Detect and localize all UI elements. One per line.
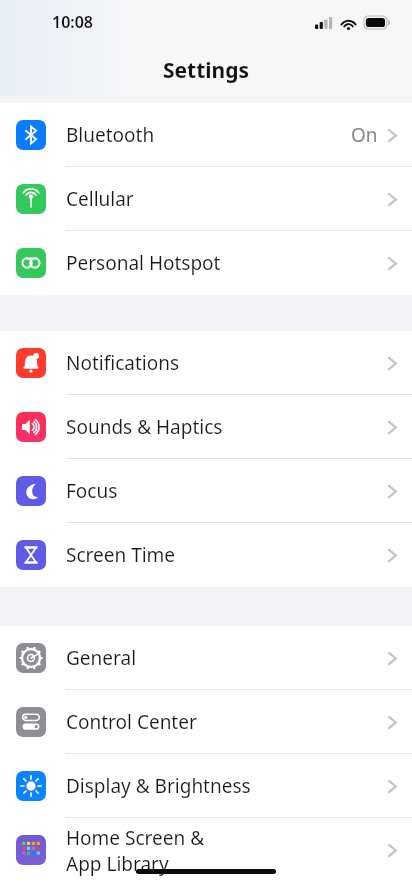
staticText: Settings [163,56,250,85]
button[interactable]: Screen Time [0,523,412,587]
staticText: Screen Time [66,542,176,568]
staticText: Control Center [66,709,197,735]
button[interactable]: Home Screen & App Library [0,818,412,882]
button[interactable]: Cellular [0,167,412,231]
staticText: Notifications [66,350,180,376]
staticText: Bluetooth [66,122,155,148]
staticText: 10:08 [52,11,94,33]
staticText: Home Screen & App Library [66,825,205,876]
staticText: On [351,122,378,148]
staticText: Display & Brightness [66,773,251,799]
button[interactable]: Notifications [0,331,412,395]
staticText: Cellular [66,186,134,212]
staticText: Sounds & Haptics [66,414,223,440]
staticText: Focus [66,478,118,504]
button[interactable]: Control Center [0,690,412,754]
button[interactable]: Display & Brightness [0,754,412,818]
button[interactable]: General [0,626,412,690]
staticText: General [66,645,137,671]
button[interactable]: Focus [0,459,412,523]
button[interactable]: Sounds & Haptics [0,395,412,459]
staticText: Personal Hotspot [66,250,221,276]
button[interactable]: Personal Hotspot [0,231,412,295]
button[interactable]: Bluetooth [0,103,412,167]
